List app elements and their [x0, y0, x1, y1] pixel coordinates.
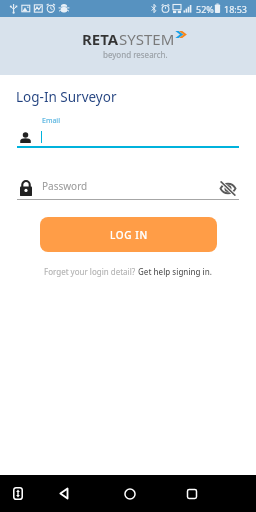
staticText: beyond research.	[103, 49, 168, 60]
staticText: SYSTEM	[119, 29, 175, 49]
button[interactable]: LOG IN	[40, 217, 217, 252]
staticText: Password	[42, 179, 88, 193]
staticText: LOG IN	[110, 228, 148, 242]
staticText: Log-In Surveyor	[16, 88, 117, 106]
button[interactable]: Home	[115, 475, 145, 512]
staticText: Forget your login detail?	[44, 266, 138, 277]
button[interactable]: Get help signing in.	[138, 266, 212, 277]
staticText: 18:53	[224, 3, 248, 15]
staticText: RETA	[82, 29, 119, 49]
button[interactable]: Back	[48, 475, 78, 512]
staticText: Email	[42, 116, 60, 126]
staticText: 52%	[196, 3, 214, 15]
button[interactable]: Rotate screen	[3, 475, 33, 512]
button[interactable]: Recent apps	[177, 475, 207, 512]
button[interactable]: Show password	[219, 176, 239, 196]
